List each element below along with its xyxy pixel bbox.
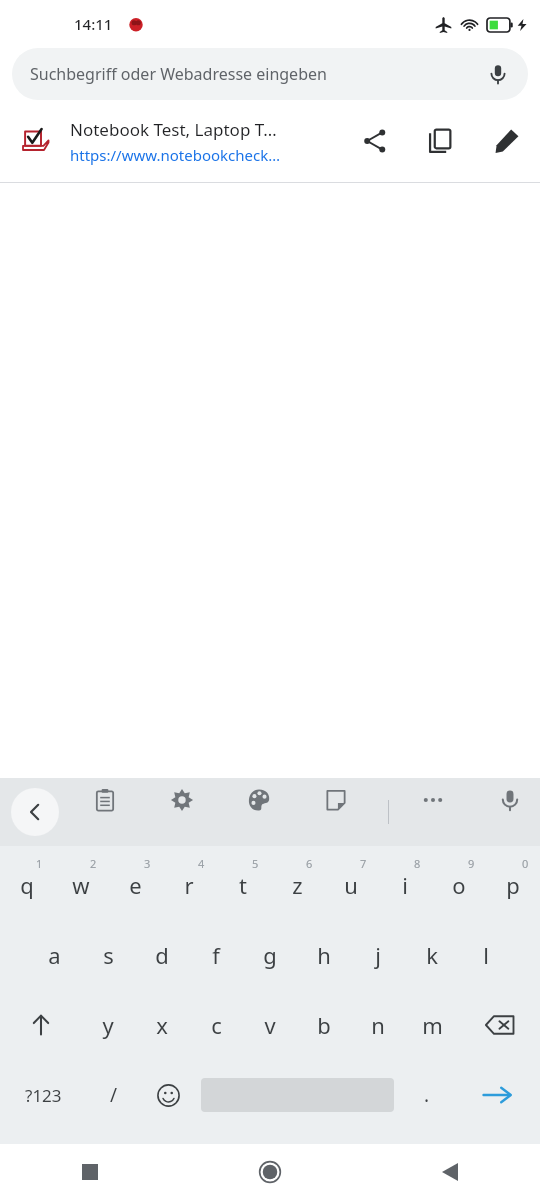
staticText: m [422,1010,443,1040]
staticText: 14:11 [74,14,113,34]
button[interactable]: h [297,920,351,990]
staticText: s [103,940,114,970]
button[interactable]: Voice search [478,54,518,94]
button[interactable]: e [108,850,162,920]
staticText: r [184,870,194,900]
staticText: x [156,1010,168,1040]
button[interactable]: Notebook Test, Laptop T… [0,100,540,182]
staticText: ?123 [25,1084,62,1107]
staticText: q [20,870,34,900]
staticText: t [239,870,247,900]
staticText: 3 [144,856,151,871]
button[interactable]: l [459,920,513,990]
button[interactable]: a [27,920,81,990]
button[interactable]: / [87,1060,141,1130]
staticText: e [129,870,142,900]
button[interactable]: Share [342,108,408,174]
staticText: https://www.notebookcheck… [70,145,281,165]
staticText: y [102,1010,114,1040]
staticText: . [424,1082,430,1108]
staticText: b [317,1010,331,1040]
staticText: a [48,940,61,970]
button[interactable]: Edit [474,108,540,174]
button[interactable]: g [243,920,297,990]
button[interactable]: v [243,990,297,1060]
button[interactable]: Voice input [488,778,532,822]
staticText: z [292,870,303,900]
button[interactable]: d [135,920,189,990]
button[interactable]: x [135,990,189,1060]
button[interactable]: Theme [237,778,281,822]
button[interactable]: o [432,850,486,920]
staticText: u [344,870,358,900]
button[interactable]: n [351,990,405,1060]
button[interactable]: w [54,850,108,920]
staticText: i [402,870,408,900]
button[interactable]: ?123 [0,1060,87,1130]
staticText: Notebook Test, Laptop T… [70,118,277,141]
button[interactable]: Backspace [459,990,540,1060]
button[interactable]: t [216,850,270,920]
button[interactable]: b [297,990,351,1060]
staticText: 4 [198,856,205,871]
staticText: 9 [468,856,475,871]
button[interactable]: Copy [408,108,474,174]
staticText: d [155,940,169,970]
button[interactable]: m [405,990,459,1060]
staticText: p [506,870,520,900]
button[interactable]: i [378,850,432,920]
button[interactable]: Clipboard [83,778,127,822]
staticText: 1 [36,856,43,871]
button[interactable]: Back [11,788,59,836]
staticText: 7 [360,856,367,871]
button[interactable]: Back [360,1144,540,1200]
button[interactable]: Emoji [141,1060,195,1130]
button[interactable]: Suchbegriff oder Webadresse eingeben [12,48,528,100]
staticText: 8 [414,856,421,871]
staticText: v [264,1010,276,1040]
staticText: Suchbegriff oder Webadresse eingeben [30,63,327,85]
staticText: k [426,940,438,970]
button[interactable]: Go [454,1060,540,1130]
staticText: h [317,940,331,970]
staticText: 2 [90,856,97,871]
button[interactable]: r [162,850,216,920]
staticText: 6 [306,856,313,871]
staticText: 5 [252,856,259,871]
staticText: j [375,940,381,970]
staticText: f [212,940,220,970]
button[interactable]: s [81,920,135,990]
staticText: g [263,940,277,970]
button[interactable]: z [270,850,324,920]
button[interactable]: p [486,850,540,920]
staticText: / [110,1082,118,1108]
button[interactable]: f [189,920,243,990]
button[interactable]: Settings [160,778,204,822]
button[interactable]: q [0,850,54,920]
button[interactable]: . [400,1060,454,1130]
staticText: n [371,1010,385,1040]
button[interactable]: Sticker [314,778,358,822]
staticText: o [452,870,466,900]
staticText: c [211,1010,222,1040]
button[interactable]: Home [180,1144,360,1200]
staticText: l [483,940,489,970]
button[interactable]: Recent apps [0,1144,180,1200]
button[interactable]: Shift [0,990,81,1060]
button[interactable]: u [324,850,378,920]
button[interactable]: c [189,990,243,1060]
button[interactable]: More options [411,778,455,822]
button[interactable]: j [351,920,405,990]
staticText: w [72,870,90,900]
button[interactable]: k [405,920,459,990]
button[interactable]: y [81,990,135,1060]
staticText: 0 [522,856,529,871]
